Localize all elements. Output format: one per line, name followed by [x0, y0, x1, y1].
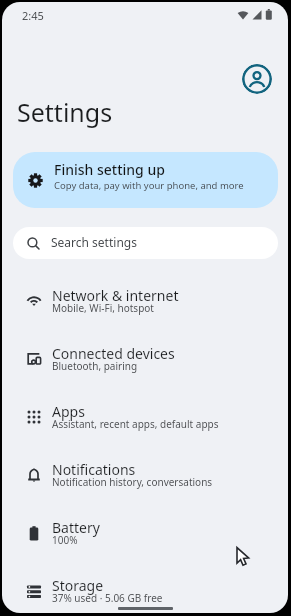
staticText: 100% — [52, 533, 78, 547]
staticText: Storage — [52, 576, 104, 595]
button[interactable]: Notifications — [2, 446, 288, 504]
staticText: Search settings — [51, 234, 137, 250]
button[interactable] — [242, 64, 272, 94]
staticText: Notification history, conversations — [52, 475, 213, 489]
staticText: Settings — [17, 95, 113, 129]
staticText: Assistant, recent apps, default apps — [52, 417, 219, 431]
staticText: Mobile, Wi-Fi, hotspot — [52, 301, 154, 315]
button[interactable]: Apps — [2, 388, 288, 446]
button[interactable]: Network & internet — [2, 272, 288, 330]
button[interactable]: Storage — [2, 562, 288, 613]
button[interactable]: Search settings — [13, 227, 278, 259]
button[interactable]: Battery — [2, 504, 288, 562]
staticText: Finish setting up — [54, 160, 165, 179]
staticText: 37% used · 5.06 GB free — [52, 591, 163, 605]
staticText: Network & internet — [52, 286, 179, 305]
button[interactable]: Finish setting up — [13, 152, 278, 208]
staticText: Copy data, pay with your phone, and more — [54, 179, 244, 192]
staticText: Notifications — [52, 460, 136, 479]
staticText: Apps — [52, 402, 85, 421]
staticText: Battery — [52, 518, 100, 537]
staticText: Bluetooth, pairing — [52, 359, 138, 373]
staticText: Connected devices — [52, 344, 175, 363]
staticText: 2:45 — [22, 8, 44, 23]
button[interactable]: Connected devices — [2, 330, 288, 388]
